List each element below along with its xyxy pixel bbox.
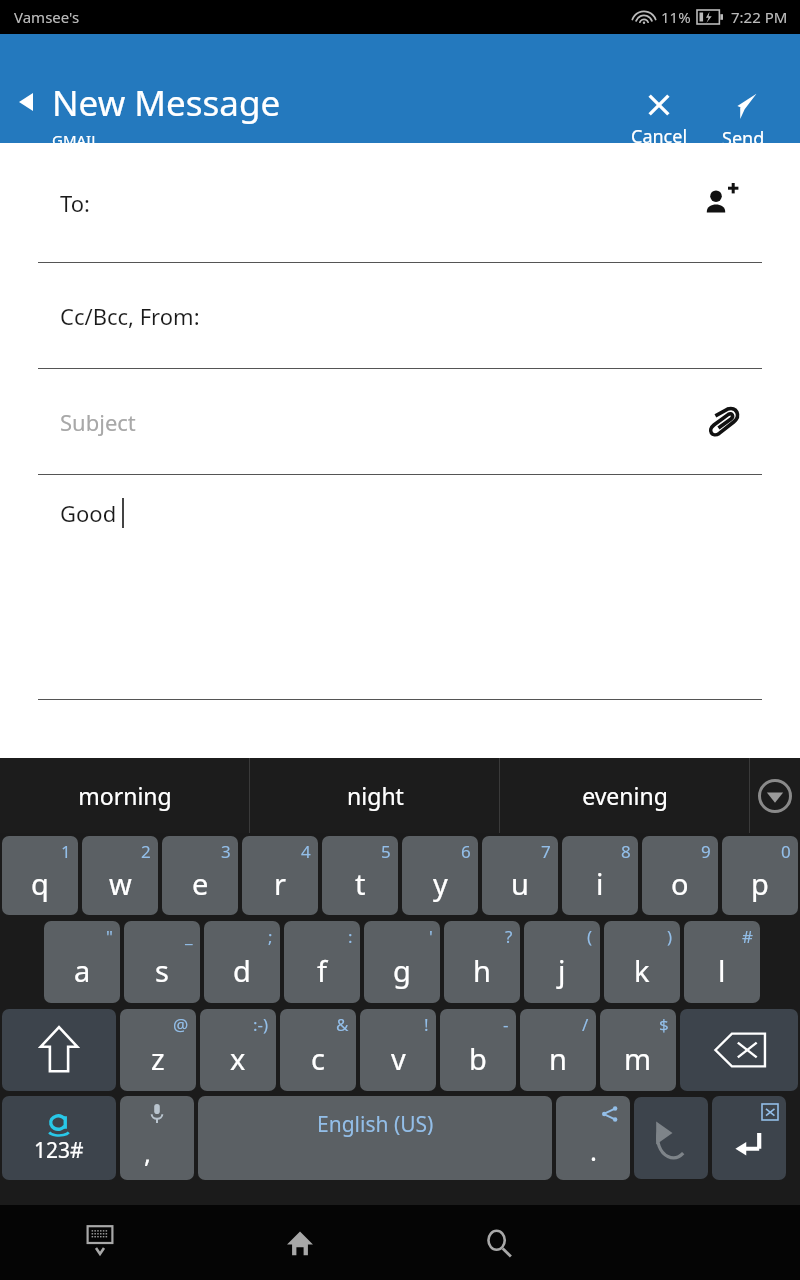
button[interactable]: Search xyxy=(400,1205,600,1280)
button[interactable]: English (US) xyxy=(198,1096,552,1180)
staticText: g xyxy=(393,951,411,990)
staticText: f xyxy=(317,951,327,990)
button[interactable]: & xyxy=(280,1009,356,1091)
button[interactable]: Shift xyxy=(2,1009,116,1091)
button[interactable]: morning xyxy=(0,758,250,833)
button[interactable]: Expand suggestions xyxy=(750,758,800,833)
staticText: 2 xyxy=(141,840,151,863)
staticText: a xyxy=(74,951,91,990)
button[interactable]: Home xyxy=(200,1205,400,1280)
staticText: Cancel xyxy=(631,124,688,149)
button[interactable]: Subject xyxy=(0,369,800,475)
staticText: New Message xyxy=(52,79,281,127)
button[interactable]: ? xyxy=(444,921,520,1003)
staticText: ) xyxy=(667,925,673,948)
staticText: m xyxy=(624,1039,652,1078)
staticText: q xyxy=(31,864,49,903)
staticText: n xyxy=(549,1039,567,1078)
staticText: j xyxy=(558,951,566,990)
button[interactable]: 0 xyxy=(722,836,798,915)
button[interactable]: Backspace xyxy=(680,1009,798,1091)
staticText: l xyxy=(718,951,726,990)
staticText: 1 xyxy=(61,840,71,863)
button[interactable]: 2 xyxy=(82,836,158,915)
staticText: p xyxy=(751,864,769,903)
button[interactable]: , xyxy=(120,1096,194,1180)
staticText: y xyxy=(433,864,448,903)
staticText: : xyxy=(348,925,353,948)
button[interactable]: Enter xyxy=(712,1096,786,1180)
button[interactable]: 123# xyxy=(2,1096,116,1180)
button[interactable]: 8 xyxy=(562,836,638,915)
staticText: / xyxy=(582,1013,589,1036)
button[interactable]: _ xyxy=(124,921,200,1003)
staticText: 4 xyxy=(301,840,311,863)
staticText: i xyxy=(596,864,604,903)
staticText: d xyxy=(233,951,251,990)
staticText: o xyxy=(671,864,689,903)
button[interactable]: ; xyxy=(204,921,280,1003)
staticText: e xyxy=(192,864,209,903)
button[interactable]: Attach file xyxy=(704,403,742,441)
staticText: 8 xyxy=(621,840,631,863)
staticText: 9 xyxy=(701,840,711,863)
staticText: u xyxy=(511,864,529,903)
button[interactable]: ' xyxy=(364,921,440,1003)
staticText: b xyxy=(469,1039,487,1078)
staticText: r xyxy=(274,864,286,903)
button[interactable]: night xyxy=(250,758,500,833)
staticText: Good xyxy=(60,498,122,528)
staticText: English (US) xyxy=(317,1110,434,1139)
staticText: ? xyxy=(505,925,513,948)
button[interactable]: To: xyxy=(0,143,800,263)
button[interactable]: Good xyxy=(0,475,800,700)
button[interactable]: Cc/Bcc, From: xyxy=(0,263,800,369)
button[interactable]: Add contact xyxy=(700,183,740,223)
staticText: Send xyxy=(722,126,765,151)
staticText: & xyxy=(336,1013,349,1036)
staticText: . xyxy=(590,1133,597,1168)
staticText: Vamsee's xyxy=(14,7,80,27)
staticText: 7:22 PM xyxy=(731,7,788,27)
staticText: 6 xyxy=(461,840,471,863)
staticText: v xyxy=(391,1039,406,1078)
button[interactable]: ) xyxy=(604,921,680,1003)
button[interactable]: 3 xyxy=(162,836,238,915)
staticText: k xyxy=(634,951,650,990)
button[interactable]: / xyxy=(520,1009,596,1091)
button[interactable]: 4 xyxy=(242,836,318,915)
staticText: ! xyxy=(424,1013,429,1036)
button[interactable]: 1 xyxy=(2,836,78,915)
staticText: To: xyxy=(60,188,90,218)
button[interactable]: - xyxy=(440,1009,516,1091)
button[interactable]: Back xyxy=(10,86,42,118)
staticText: evening xyxy=(582,780,668,811)
staticText: x xyxy=(230,1039,246,1078)
button[interactable]: Undo xyxy=(634,1097,708,1179)
button[interactable]: 5 xyxy=(322,836,398,915)
button[interactable]: 6 xyxy=(402,836,478,915)
button[interactable]: :-) xyxy=(200,1009,276,1091)
staticText: 11% xyxy=(661,7,691,27)
staticText: c xyxy=(311,1039,325,1078)
staticText: # xyxy=(742,925,753,948)
staticText: morning xyxy=(78,780,172,811)
button[interactable]: . xyxy=(556,1096,630,1180)
button[interactable]: : xyxy=(284,921,360,1003)
staticText: $ xyxy=(659,1013,669,1036)
button[interactable]: 7 xyxy=(482,836,558,915)
button[interactable]: Send xyxy=(702,92,784,151)
staticText: 123# xyxy=(34,1136,84,1165)
button[interactable]: Hide keyboard xyxy=(0,1205,200,1280)
button[interactable]: ( xyxy=(524,921,600,1003)
button[interactable]: " xyxy=(44,921,120,1003)
button[interactable]: 9 xyxy=(642,836,718,915)
button[interactable]: @ xyxy=(120,1009,196,1091)
staticText: _ xyxy=(185,925,193,948)
button[interactable]: evening xyxy=(500,758,750,833)
button[interactable]: $ xyxy=(600,1009,676,1091)
button[interactable]: ! xyxy=(360,1009,436,1091)
button[interactable]: Cancel xyxy=(616,92,702,149)
staticText: 0 xyxy=(781,840,791,863)
button[interactable]: # xyxy=(684,921,760,1003)
